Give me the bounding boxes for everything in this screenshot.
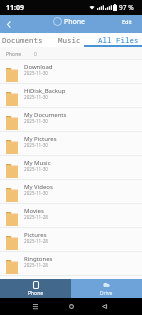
staticText: Download [24,63,53,71]
button[interactable]: Download [0,60,142,84]
button[interactable]: My Documents [0,108,142,132]
button[interactable]: My Pictures [0,132,142,156]
staticText: Drive [100,290,113,297]
staticText: Phone [28,290,44,297]
button[interactable]: Phone [6,51,22,58]
staticText: Edit [122,18,132,25]
staticText: All Files [98,35,139,45]
staticText: 2025-11-30 [24,142,48,148]
button[interactable]: Drive [71,279,142,298]
staticText: 2025-11-30 [24,70,48,76]
staticText: My Pictures [24,135,57,143]
staticText: My Videos [24,183,53,191]
staticText: Documents [2,35,43,45]
staticText: 2025-11-28 [24,214,48,220]
button[interactable]: Home [63,298,80,315]
button[interactable]: My Videos [0,180,142,204]
staticText: 2025-11-28 [24,262,48,268]
button[interactable]: Edit [122,18,132,25]
staticText: 11:09 [6,3,24,13]
button[interactable]: Phone [0,279,71,298]
staticText: Ringtones [24,255,53,263]
staticText: Phone [64,17,86,27]
button[interactable]: Ringtones [0,252,142,276]
staticText: 2025-11-30 [24,118,48,124]
button[interactable]: Recents [27,298,44,315]
staticText: 97 % [119,3,134,12]
button[interactable]: Back [0,15,18,33]
button[interactable]: Pictures [0,228,142,252]
button[interactable]: Music [50,33,89,47]
staticText: Pictures [24,231,47,239]
staticText: 2025-11-30 [24,166,48,172]
button[interactable]: Back [96,298,113,315]
staticText: Movies [24,207,44,215]
staticText: My Music [24,159,51,167]
button[interactable]: HiDisk_Backup [0,84,142,108]
button[interactable]: Movies [0,204,142,228]
button[interactable]: Documents [0,33,45,47]
staticText: 2025-11-30 [24,190,48,196]
staticText: 2025-11-28 [24,238,48,244]
button[interactable]: All Files [84,33,142,47]
staticText: 2025-11-30 [24,94,48,100]
button[interactable]: My Music [0,156,142,180]
staticText: 0 [34,51,37,58]
staticText: Music [58,35,81,45]
staticText: HiDisk_Backup [24,87,66,95]
staticText: My Documents [24,111,67,119]
